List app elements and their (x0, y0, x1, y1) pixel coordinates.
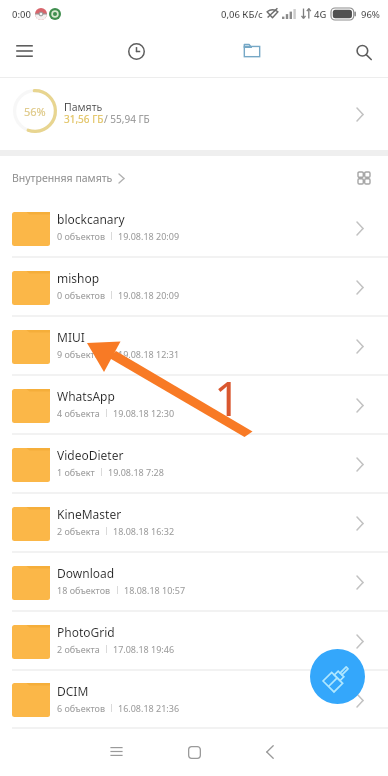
staticText: 0,06 КБ/c (221, 8, 263, 21)
staticText: 2 объекта (57, 525, 100, 537)
button[interactable]: Search (344, 33, 384, 73)
staticText: 19.08.18 20:09 (118, 289, 180, 301)
staticText: 2 объекта (57, 643, 100, 655)
staticText: 18.08.18 10:57 (124, 584, 186, 596)
staticText: 17.08.18 19:46 (113, 643, 175, 655)
staticText: PhotoGrid (57, 624, 115, 640)
staticText: 0 объектов (57, 289, 105, 301)
button[interactable]: KineMaster (0, 494, 388, 553)
button[interactable]: Files (232, 29, 272, 69)
button[interactable]: Recent files (116, 31, 156, 71)
staticText: blockcanary (57, 211, 125, 227)
button[interactable]: DCIM (0, 671, 388, 729)
button[interactable]: Внутренняя память (12, 171, 125, 185)
button[interactable]: blockcanary (0, 199, 388, 258)
staticText: Download (57, 565, 115, 581)
staticText: 19.08.18 12:30 (113, 407, 175, 419)
staticText: Память (64, 100, 103, 114)
staticText: 4G (314, 8, 327, 21)
staticText: KineMaster (57, 506, 122, 522)
staticText: 0:00 (12, 8, 31, 21)
button[interactable]: Back (250, 732, 290, 772)
staticText: Внутренняя память (12, 171, 113, 185)
staticText: 6 объектов (57, 702, 105, 714)
staticText: 16.08.18 21:36 (118, 702, 180, 714)
staticText: 1 объект (57, 466, 95, 478)
button[interactable]: mishop (0, 258, 388, 317)
staticText: / 55,94 ГБ (104, 112, 150, 126)
staticText: 18.08.18 16:32 (113, 525, 175, 537)
staticText: WhatsApp (57, 388, 115, 404)
button[interactable]: PhotoGrid (0, 612, 388, 671)
staticText: 31,56 ГБ (64, 112, 104, 126)
button[interactable]: 56% (0, 78, 388, 150)
staticText: DCIM (57, 683, 89, 699)
button[interactable]: Clean up (310, 649, 365, 704)
staticText: 1 (214, 366, 241, 430)
staticText: 0 объектов (57, 230, 105, 242)
staticText: VideoDieter (57, 447, 124, 463)
staticText: 56% (24, 104, 46, 119)
staticText: 4 объекта (57, 407, 100, 419)
button[interactable]: Download (0, 553, 388, 612)
staticText: 96% (361, 8, 380, 21)
button[interactable]: Grid view (347, 161, 381, 195)
button[interactable]: Recents (96, 731, 136, 771)
staticText: 18 объектов (57, 584, 111, 596)
staticText: 19.08.18 20:09 (118, 230, 180, 242)
staticText: 19.08.18 7:28 (108, 466, 164, 478)
staticText: 19.08.18 12:31 (118, 348, 180, 360)
staticText: 9 объектов (57, 348, 105, 360)
staticText: MIUI (57, 329, 85, 345)
button[interactable]: Home (174, 732, 214, 772)
button[interactable]: VideoDieter (0, 435, 388, 494)
button[interactable]: MIUI (0, 317, 388, 376)
button[interactable]: Menu (4, 31, 44, 71)
button[interactable]: WhatsApp (0, 376, 388, 435)
staticText: mishop (57, 270, 100, 286)
